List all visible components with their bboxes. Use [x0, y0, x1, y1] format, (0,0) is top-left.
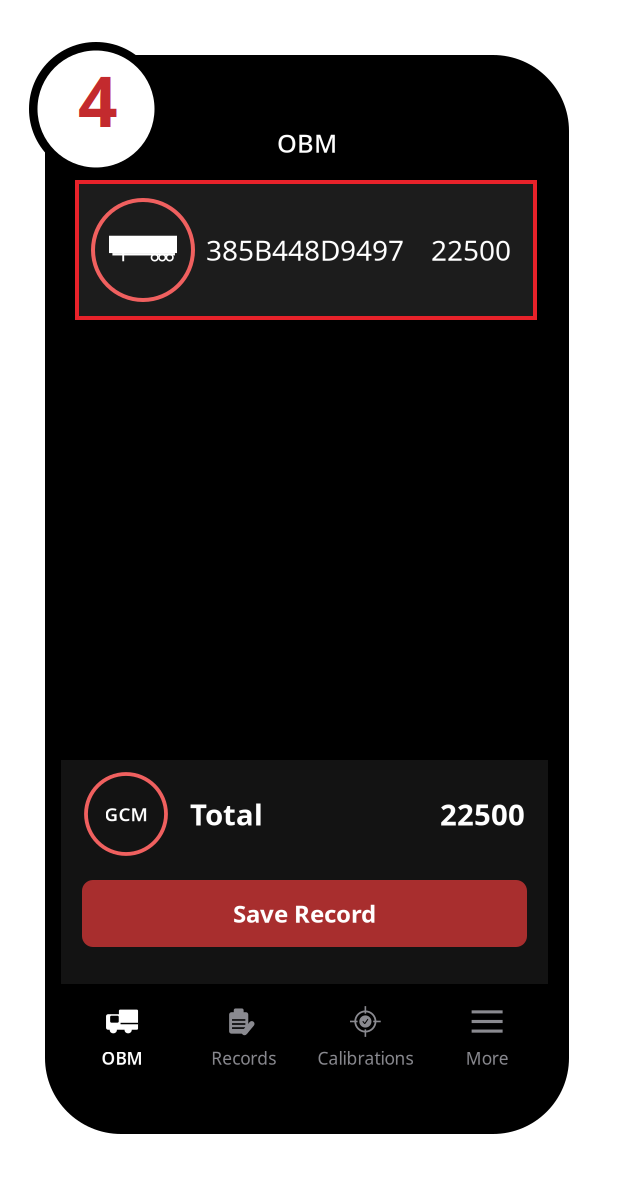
staticText: More [466, 1046, 509, 1069]
staticText: 22500 [440, 794, 525, 833]
staticText: 4 [78, 54, 118, 146]
staticText: Records [211, 1046, 276, 1069]
staticText: OBM [101, 1046, 142, 1069]
staticText: 385B448D9497 [206, 231, 404, 269]
button[interactable]: Calibrations [304, 1004, 426, 1074]
staticText: OBM [277, 126, 337, 160]
button[interactable]: Save Record [82, 880, 527, 947]
staticText: Calibrations [317, 1046, 413, 1069]
button[interactable]: Records [183, 1004, 305, 1074]
staticText: Save Record [233, 898, 376, 929]
staticText: Total [190, 794, 263, 833]
staticText: GCM [104, 802, 147, 826]
button[interactable]: OBM [61, 1004, 183, 1074]
button[interactable]: 385B448D9497 [75, 180, 537, 320]
button[interactable]: More [426, 1004, 548, 1074]
staticText: 22500 [431, 231, 511, 269]
